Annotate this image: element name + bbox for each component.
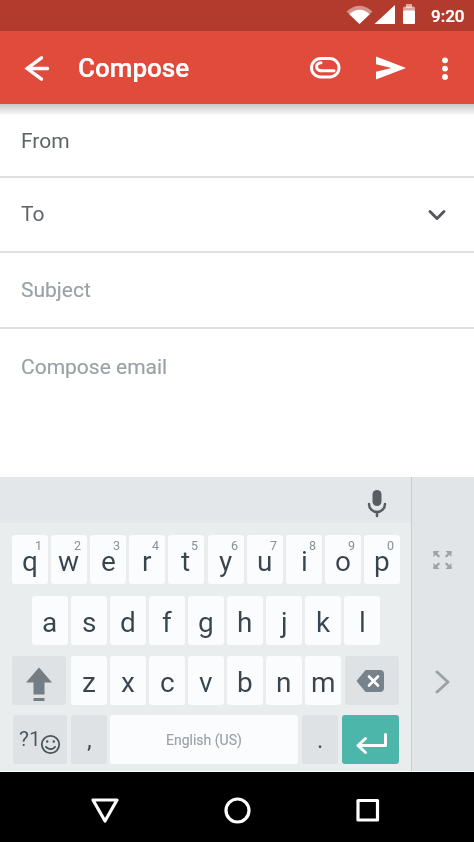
staticText: 2 [74, 538, 82, 553]
staticText: 9 [348, 538, 356, 553]
staticText: w [58, 545, 80, 578]
staticText: 4 [152, 538, 160, 553]
staticText: u [257, 545, 273, 578]
button[interactable]: u [247, 535, 283, 584]
staticText: From [21, 129, 70, 154]
button[interactable]: n [266, 656, 302, 705]
staticText: Compose email [21, 355, 168, 380]
staticText: k [316, 606, 331, 639]
staticText: y [219, 545, 233, 578]
button[interactable]: To [0, 178, 474, 251]
button[interactable]: . [302, 715, 338, 764]
button[interactable] [417, 536, 467, 584]
button[interactable] [342, 715, 399, 764]
staticText: . [317, 726, 324, 754]
staticText: 6 [231, 538, 239, 553]
staticText: 7 [270, 538, 278, 553]
button[interactable]: i [286, 535, 322, 584]
button[interactable]: m [305, 656, 341, 705]
staticText: To [21, 202, 45, 227]
staticText: n [276, 666, 292, 699]
staticText: 8 [309, 538, 317, 553]
button[interactable]: English (US) [110, 715, 298, 764]
staticText: h [237, 606, 253, 639]
button[interactable]: p [364, 535, 400, 584]
staticText: a [42, 606, 58, 639]
staticText: 9:20 [431, 6, 465, 26]
button[interactable]: l [344, 596, 380, 645]
button[interactable]: e [90, 535, 126, 584]
staticText: 0 [387, 538, 395, 553]
button[interactable] [364, 45, 412, 93]
staticText: b [237, 666, 253, 699]
staticText: t [181, 545, 191, 578]
button[interactable] [424, 45, 472, 93]
staticText: j [281, 606, 288, 639]
staticText: i [301, 545, 308, 578]
staticText: Compose [78, 53, 190, 83]
staticText: 3 [113, 538, 121, 553]
button[interactable]: j [266, 596, 302, 645]
staticText: d [120, 606, 136, 639]
button[interactable]: y [208, 535, 244, 584]
staticText: z [82, 666, 96, 699]
button[interactable]: Subject [0, 253, 474, 327]
button[interactable]: o [325, 535, 361, 584]
button[interactable]: ?1 [13, 715, 67, 764]
button[interactable]: h [227, 596, 263, 645]
staticText: e [101, 545, 116, 578]
staticText: v [199, 666, 213, 699]
button[interactable] [345, 656, 399, 705]
button[interactable]: g [188, 596, 224, 645]
button[interactable] [0, 477, 411, 523]
staticText: r [142, 545, 152, 578]
button[interactable] [81, 786, 129, 834]
button[interactable] [12, 656, 66, 705]
staticText: o [335, 545, 351, 578]
staticText: g [198, 606, 214, 639]
button[interactable]: a [32, 596, 68, 645]
button[interactable] [14, 45, 62, 93]
staticText: Subject [21, 278, 91, 303]
staticText: m [311, 666, 336, 699]
button[interactable]: f [149, 596, 185, 645]
button[interactable]: k [305, 596, 341, 645]
button[interactable]: From [0, 107, 474, 176]
button[interactable] [213, 786, 261, 834]
button[interactable]: z [71, 656, 107, 705]
button[interactable]: q [12, 535, 48, 584]
button[interactable]: b [227, 656, 263, 705]
button[interactable]: w [51, 535, 87, 584]
staticText: c [160, 666, 175, 699]
button[interactable]: c [149, 656, 185, 705]
button[interactable]: t [168, 535, 204, 584]
staticText: q [22, 545, 38, 578]
staticText: 5 [191, 538, 199, 553]
button[interactable] [344, 786, 392, 834]
button[interactable]: r [129, 535, 165, 584]
button[interactable]: x [110, 656, 146, 705]
staticText: 1 [35, 538, 43, 553]
button[interactable]: , [71, 715, 107, 764]
button[interactable]: d [110, 596, 146, 645]
staticText: English (US) [166, 732, 242, 748]
staticText: ?1 [19, 727, 41, 752]
staticText: , [87, 726, 92, 754]
button[interactable] [417, 658, 467, 706]
staticText: f [162, 606, 172, 639]
button[interactable]: v [188, 656, 224, 705]
staticText: x [121, 666, 135, 699]
staticText: l [359, 606, 366, 639]
button[interactable]: Compose email [0, 329, 474, 405]
button[interactable]: s [71, 596, 107, 645]
staticText: p [374, 545, 390, 578]
staticText: s [82, 606, 97, 639]
button[interactable] [301, 45, 349, 93]
